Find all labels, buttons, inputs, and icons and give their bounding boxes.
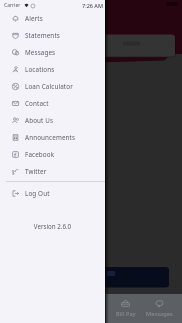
staticText: 7:26 AM (82, 2, 104, 9)
button[interactable]: Facebook (0, 146, 105, 163)
button[interactable]: Messages (143, 294, 176, 323)
staticText: Carrier (4, 2, 21, 9)
staticText: Messages (146, 310, 173, 318)
button[interactable]: Loan Calculator (0, 78, 105, 95)
staticText: Loan Calculator (25, 82, 73, 91)
staticText: About Us (25, 116, 54, 125)
staticText: Locations (25, 65, 55, 74)
button[interactable]: Locations (0, 61, 105, 78)
staticText: Facebook (25, 150, 55, 159)
staticText: Messages (25, 48, 56, 57)
staticText: Log Out (25, 189, 50, 198)
button[interactable]: Statements (0, 27, 105, 44)
staticText: Version 2.6.0 (0, 222, 105, 230)
staticText: Bill Pay (116, 310, 136, 318)
button[interactable]: Bill Pay (109, 294, 142, 323)
button[interactable]: Contact (0, 95, 105, 112)
staticText: Contact (25, 99, 49, 108)
button[interactable]: Alerts (0, 10, 105, 27)
staticText: Announcements (25, 133, 76, 142)
staticText: Alerts (25, 14, 43, 23)
button[interactable]: Messages (0, 44, 105, 61)
staticText: Twitter (25, 167, 47, 176)
button[interactable]: Twitter (0, 163, 105, 180)
button[interactable]: Announcements (0, 129, 105, 146)
staticText: Statements (25, 31, 60, 40)
button[interactable]: Log Out (0, 185, 105, 202)
button[interactable]: About Us (0, 112, 105, 129)
